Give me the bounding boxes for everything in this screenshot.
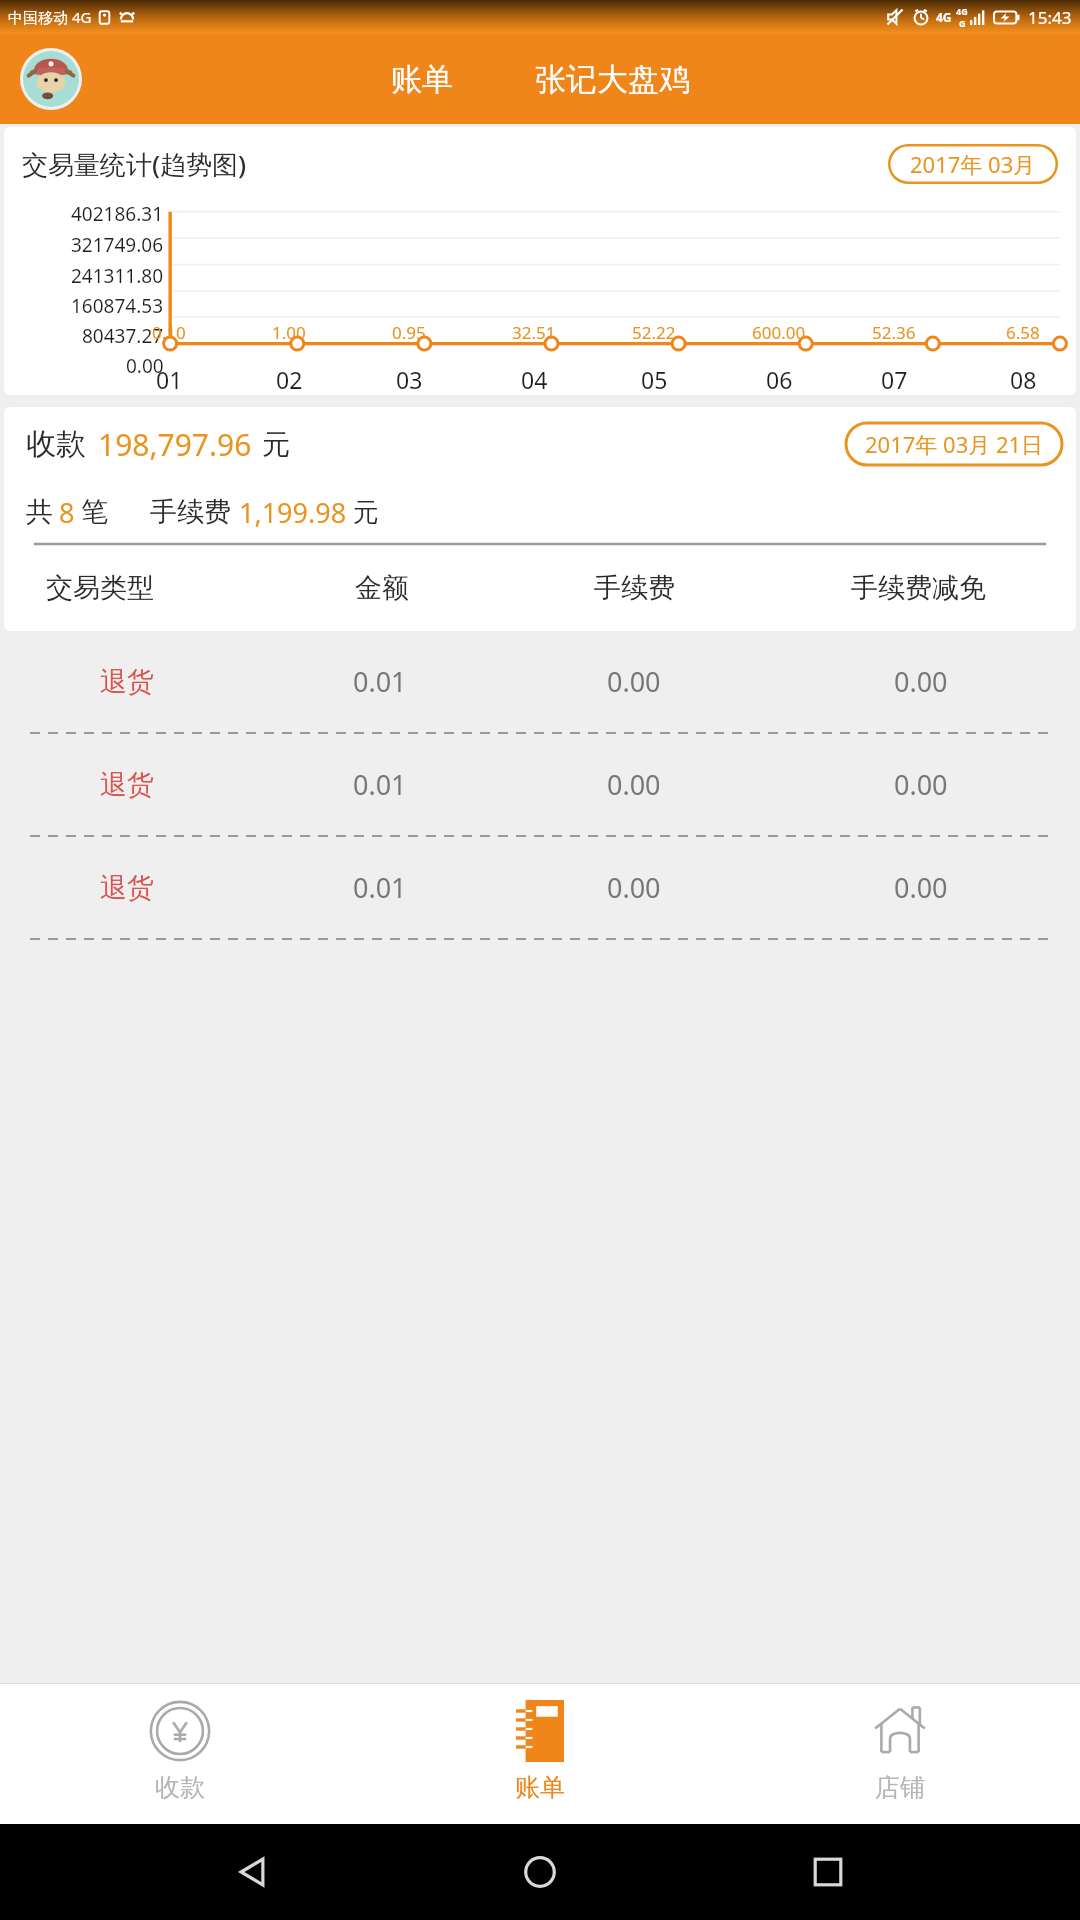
staticText: 15:43 [1028, 6, 1072, 29]
staticText: 共 [26, 495, 53, 529]
staticText: 03 [396, 364, 423, 395]
staticText: 交易类型 [46, 571, 154, 605]
button[interactable]: 退货 [0, 631, 1080, 734]
staticText: 1.00 [272, 321, 306, 344]
button[interactable]: 2017年 03月 [888, 144, 1058, 184]
staticText: 160874.53 [71, 293, 164, 319]
staticText: 6.58 [1006, 321, 1040, 344]
staticText: 0.10 [152, 321, 186, 344]
button[interactable]: 店铺 [720, 1684, 1080, 1824]
staticText: 0.00 [894, 766, 948, 803]
staticText: 4G [956, 5, 968, 17]
staticText: 交易量统计(趋势图) [22, 146, 247, 182]
button[interactable]: 2017年 03月 21日 [846, 423, 1062, 465]
staticText: 321749.06 [71, 232, 164, 258]
staticText: 0.95 [392, 321, 426, 344]
button[interactable]: 退货 [0, 734, 1080, 837]
staticText: 笔 [81, 495, 108, 529]
button[interactable]: 账单 [391, 60, 453, 99]
button[interactable]: Home [504, 1836, 576, 1908]
staticText: 2017年 03月 [910, 149, 1036, 179]
staticText: 2017年 03月 21日 [865, 429, 1044, 459]
staticText: 08 [1010, 364, 1037, 395]
staticText: 1,199.98 [239, 494, 347, 531]
staticText: 金额 [355, 571, 409, 605]
staticText: 账单 [515, 1772, 565, 1803]
staticText: 退货 [100, 665, 154, 699]
staticText: 32.51 [512, 321, 556, 344]
staticText: 402186.31 [71, 201, 164, 227]
staticText: 0.01 [353, 869, 407, 906]
staticText: 0.00 [607, 869, 661, 906]
button[interactable]: Back [216, 1836, 288, 1908]
staticText: 198,797.96 [98, 424, 252, 465]
button[interactable]: 账单 [360, 1684, 720, 1824]
staticText: 元 [353, 496, 379, 529]
staticText: 0.00 [126, 353, 164, 379]
staticText: 04 [521, 364, 548, 395]
staticText: 05 [641, 364, 668, 395]
staticText: 52.22 [632, 321, 676, 344]
staticText: 600.00 [752, 321, 806, 344]
staticText: 241311.80 [71, 263, 164, 289]
staticText: 退货 [100, 768, 154, 802]
staticText: 4G [936, 9, 952, 25]
staticText: 8 [59, 494, 75, 531]
staticText: 中国移动 4G [8, 7, 92, 27]
staticText: 0.00 [607, 663, 661, 700]
button[interactable]: 收款 [0, 1684, 360, 1824]
staticText: 0.01 [353, 766, 407, 803]
staticText: G [959, 17, 966, 29]
staticText: 元 [262, 427, 290, 462]
staticText: 80437.27 [82, 323, 164, 349]
staticText: 01 [156, 364, 183, 395]
staticText: 0.00 [894, 663, 948, 700]
staticText: 收款 [155, 1772, 205, 1803]
staticText: 0.00 [607, 766, 661, 803]
staticText: 店铺 [875, 1772, 925, 1803]
staticText: 0.00 [894, 869, 948, 906]
staticText: 02 [276, 364, 303, 395]
button[interactable]: Profile [20, 48, 82, 110]
staticText: 0.01 [353, 663, 407, 700]
staticText: 退货 [100, 871, 154, 905]
button[interactable]: 退货 [0, 837, 1080, 940]
button[interactable]: 张记大盘鸡 [535, 60, 690, 99]
staticText: 07 [881, 364, 908, 395]
staticText: 52.36 [872, 321, 916, 344]
staticText: 收款 [26, 425, 86, 463]
staticText: 手续费减免 [851, 571, 986, 605]
staticText: 手续费 [594, 571, 675, 605]
staticText: 06 [766, 364, 793, 395]
staticText: 手续费 [150, 495, 231, 529]
button[interactable]: Recent apps [792, 1836, 864, 1908]
